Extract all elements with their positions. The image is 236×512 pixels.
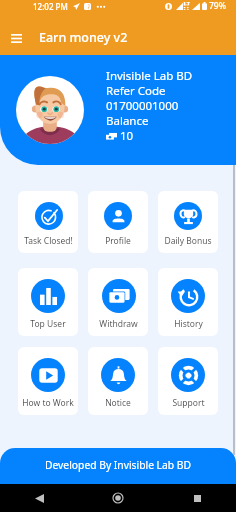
button[interactable]: Task Closed!: [18, 191, 78, 253]
staticText: Top User: [30, 318, 66, 330]
button[interactable]: How to Work: [18, 347, 78, 415]
button[interactable]: Profile: [88, 191, 148, 253]
staticText: 01700001000: [106, 98, 179, 113]
staticText: 79%: [209, 0, 226, 12]
button[interactable]: Developed By Invisible Lab BD: [0, 448, 236, 484]
button[interactable]: Menu: [0, 22, 33, 55]
staticText: Notice: [105, 397, 131, 409]
staticText: Withdraw: [99, 318, 138, 330]
staticText: Earn money v2: [39, 29, 128, 46]
staticText: Refer Code: [106, 83, 166, 98]
button[interactable]: Back: [19, 484, 59, 512]
staticText: Daily Bonus: [164, 235, 212, 247]
button[interactable]: Notice: [88, 347, 148, 415]
staticText: Balance: [106, 113, 149, 128]
staticText: Task Closed!: [24, 235, 73, 247]
button[interactable]: Top User: [18, 268, 78, 336]
staticText: How to Work: [22, 397, 74, 409]
staticText: Profile: [105, 235, 131, 247]
staticText: Developed By Invisible Lab BD: [45, 458, 192, 472]
staticText: 10: [120, 128, 134, 143]
button[interactable]: Home: [98, 484, 138, 512]
staticText: 12:02 PM: [33, 1, 68, 12]
button[interactable]: Daily Bonus: [158, 191, 218, 253]
button[interactable]: Support: [158, 347, 218, 415]
staticText: History: [174, 318, 203, 330]
button[interactable]: Recents: [177, 484, 217, 512]
staticText: Support: [172, 397, 205, 409]
staticText: Invisible Lab BD: [106, 68, 193, 83]
button[interactable]: Withdraw: [88, 268, 148, 336]
button[interactable]: History: [158, 268, 218, 336]
